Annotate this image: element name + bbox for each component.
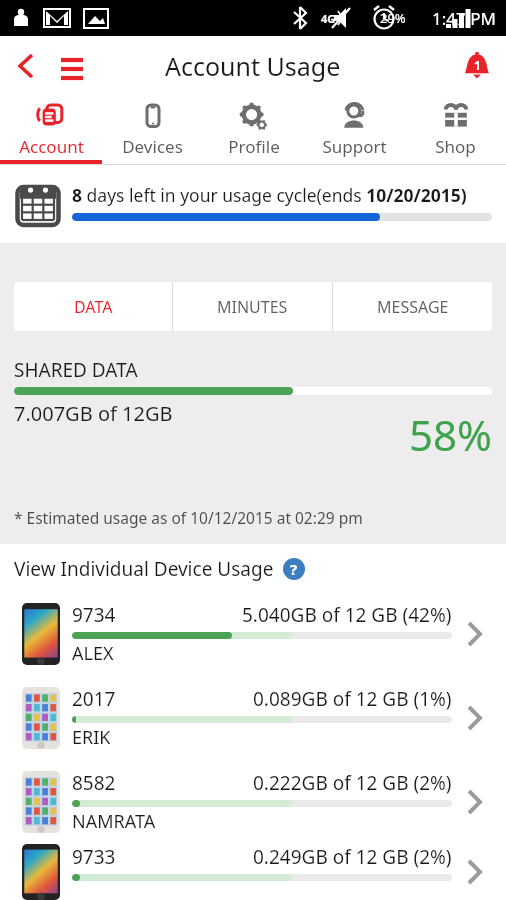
staticText: 8 days left in your usage cycle(ends 10/… bbox=[72, 183, 467, 207]
staticText: Support bbox=[322, 135, 387, 158]
staticText: NAMRATA bbox=[72, 809, 156, 834]
staticText: Account Usage bbox=[165, 49, 341, 83]
button[interactable]: Shop bbox=[405, 96, 506, 164]
button[interactable]: View Individual Device Usage bbox=[14, 556, 506, 582]
button[interactable]: Account bbox=[0, 96, 102, 164]
button[interactable]: MESSAGE bbox=[333, 282, 492, 331]
staticText: 0.222GB of 12 GB (2%) bbox=[253, 770, 452, 796]
button[interactable]: 8582 bbox=[0, 760, 506, 844]
staticText: 0.249GB of 12 GB (2%) bbox=[253, 844, 452, 870]
other: Open device details bbox=[452, 844, 496, 900]
staticText: ALEX bbox=[72, 641, 114, 666]
staticText: 8582 bbox=[72, 770, 116, 796]
staticText: ERIK bbox=[72, 725, 111, 750]
button[interactable]: 9734 bbox=[0, 592, 506, 676]
staticText: Devices bbox=[122, 135, 183, 158]
other: Open device details bbox=[452, 676, 496, 760]
button[interactable]: DATA bbox=[14, 282, 172, 331]
staticText: 58% bbox=[409, 406, 492, 463]
button[interactable]: 9733 bbox=[0, 844, 506, 900]
staticText: 0.089GB of 12 GB (1%) bbox=[253, 686, 452, 712]
button[interactable]: Notifications bbox=[456, 45, 498, 87]
other: Open device details bbox=[452, 760, 496, 844]
button[interactable]: Back bbox=[6, 46, 46, 86]
staticText: DATA bbox=[74, 296, 113, 318]
staticText: 4G bbox=[321, 11, 336, 26]
staticText: SHARED DATA bbox=[14, 357, 138, 383]
staticText: ? bbox=[290, 559, 298, 579]
button[interactable]: 2017 bbox=[0, 676, 506, 760]
staticText: MINUTES bbox=[217, 296, 288, 318]
staticText: * Estimated usage as of 10/12/2015 at 02… bbox=[14, 507, 363, 528]
staticText: 1 bbox=[474, 57, 481, 73]
other: Help bbox=[283, 558, 305, 580]
button[interactable]: Support bbox=[304, 96, 405, 164]
staticText: 5.040GB of 12 GB (42%) bbox=[242, 602, 452, 628]
staticText: 29% bbox=[380, 9, 406, 27]
staticText: MESSAGE bbox=[377, 296, 449, 318]
staticText: 9734 bbox=[72, 602, 116, 628]
staticText: 2017 bbox=[72, 686, 116, 712]
other: Open device details bbox=[452, 592, 496, 676]
staticText: Profile bbox=[228, 135, 280, 158]
staticText: 1:47 PM bbox=[432, 7, 496, 30]
staticText: Shop bbox=[435, 135, 476, 158]
staticText: Account bbox=[19, 135, 84, 158]
staticText: 9733 bbox=[72, 844, 116, 870]
button[interactable]: Devices bbox=[102, 96, 203, 164]
button[interactable]: MINUTES bbox=[173, 282, 332, 331]
staticText: View Individual Device Usage bbox=[14, 556, 274, 582]
button[interactable]: Profile bbox=[203, 96, 304, 164]
staticText: 7.007GB of 12GB bbox=[14, 400, 173, 427]
button[interactable]: Menu bbox=[50, 44, 94, 88]
